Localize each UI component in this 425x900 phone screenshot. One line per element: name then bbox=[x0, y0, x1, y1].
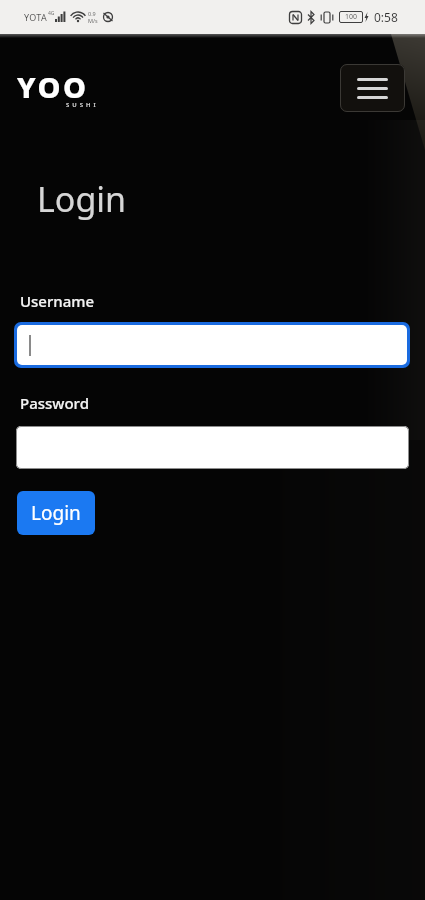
staticText: YOTA bbox=[24, 11, 47, 23]
staticText: SUSHI bbox=[66, 101, 99, 109]
staticText: M/s bbox=[88, 17, 98, 24]
staticText: 4G bbox=[48, 10, 55, 17]
staticText: Password bbox=[20, 393, 89, 413]
staticText: 100 bbox=[345, 12, 358, 22]
staticText: Username bbox=[20, 291, 95, 311]
button[interactable] bbox=[340, 64, 405, 112]
staticText: 0.9 bbox=[88, 10, 96, 17]
staticText: Login bbox=[37, 176, 127, 222]
button[interactable] bbox=[16, 426, 409, 469]
button[interactable] bbox=[17, 325, 407, 365]
staticText: 0:58 bbox=[374, 9, 398, 25]
button[interactable]: Login bbox=[17, 491, 95, 535]
staticText: Login bbox=[31, 500, 81, 526]
staticText: YOO bbox=[17, 67, 89, 106]
